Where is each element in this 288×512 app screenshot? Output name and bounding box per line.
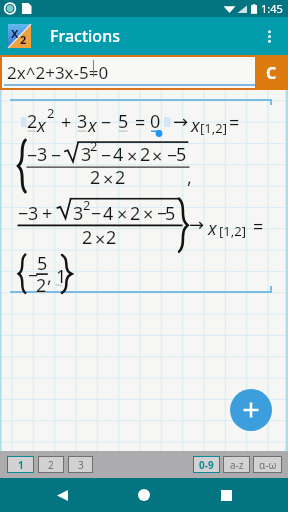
staticText: [1,2]: [219, 222, 246, 240]
staticText: ×: [127, 144, 138, 169]
staticText: 2: [130, 201, 141, 226]
staticText: x: [208, 216, 217, 241]
staticText: −: [101, 110, 112, 135]
staticText: →: [189, 214, 205, 235]
button[interactable]: 0-9: [193, 456, 220, 473]
staticText: ×: [152, 144, 163, 169]
staticText: α-ω: [259, 458, 277, 472]
staticText: 2: [47, 104, 55, 122]
staticText: =: [253, 214, 264, 239]
staticText: +: [42, 201, 53, 226]
button[interactable]: 2: [38, 456, 64, 473]
staticText: x: [37, 113, 46, 138]
button[interactable]: 3: [68, 456, 93, 473]
staticText: 2: [36, 273, 47, 298]
button[interactable]: Back: [42, 478, 82, 512]
staticText: =: [229, 110, 240, 135]
staticText: −: [91, 201, 102, 226]
staticText: 3: [81, 142, 92, 167]
staticText: 4: [103, 201, 114, 226]
staticText: =: [135, 110, 146, 135]
staticText: 4: [113, 142, 124, 167]
staticText: 2x^2+3x-5=0: [7, 61, 109, 84]
staticText: −: [27, 143, 38, 168]
staticText: 2: [90, 137, 98, 155]
staticText: 2: [20, 32, 27, 47]
staticText: 2: [115, 165, 126, 190]
staticText: 3: [28, 201, 39, 226]
staticText: 3: [37, 142, 48, 167]
staticText: 2: [106, 225, 117, 250]
staticText: 3: [73, 201, 84, 226]
button[interactable]: Home: [124, 478, 164, 512]
staticText: −: [167, 143, 178, 168]
staticText: 0: [150, 109, 161, 134]
staticText: ×: [143, 202, 154, 227]
staticText: 1: [56, 264, 67, 289]
staticText: x: [88, 113, 97, 138]
button[interactable]: Recent apps: [206, 478, 246, 512]
staticText: −: [28, 263, 39, 288]
button[interactable]: C: [255, 55, 288, 90]
staticText: 1:45: [261, 1, 283, 16]
staticText: 1: [18, 458, 24, 472]
button[interactable]: 1: [7, 456, 34, 473]
staticText: −: [157, 201, 168, 226]
staticText: Fractions: [50, 25, 120, 47]
button[interactable]: Add: [230, 389, 272, 431]
staticText: a-z: [230, 458, 244, 472]
button[interactable]: More options: [250, 17, 288, 55]
staticText: 5: [165, 201, 176, 226]
staticText: 2: [27, 109, 38, 134]
staticText: ×: [117, 202, 128, 227]
staticText: 0-9: [199, 458, 214, 472]
staticText: →: [173, 111, 189, 132]
staticText: [1,2]: [200, 119, 227, 137]
button[interactable]: 2x^2+3x-5=0: [0, 55, 255, 90]
staticText: x: [191, 113, 200, 138]
staticText: 2: [90, 165, 101, 190]
staticText: 2: [140, 142, 151, 167]
staticText: 3: [78, 458, 84, 472]
staticText: 3: [77, 109, 88, 134]
button[interactable]: a-z: [223, 456, 250, 473]
staticText: 2: [82, 225, 93, 250]
staticText: −: [51, 143, 62, 168]
staticText: 2: [83, 196, 91, 214]
staticText: X: [11, 26, 19, 41]
button[interactable]: Fractions app icon: [8, 24, 31, 48]
staticText: −: [101, 143, 112, 168]
staticText: ,: [187, 165, 192, 190]
staticText: ,: [47, 264, 52, 289]
staticText: 5: [118, 109, 129, 134]
staticText: ×: [103, 167, 114, 192]
staticText: +: [61, 110, 72, 135]
staticText: C: [266, 62, 277, 84]
staticText: 2: [48, 458, 54, 472]
staticText: ×: [95, 227, 106, 252]
staticText: 5: [176, 142, 187, 167]
button[interactable]: α-ω: [253, 456, 282, 473]
staticText: 5: [37, 251, 48, 276]
staticText: −: [18, 201, 29, 226]
